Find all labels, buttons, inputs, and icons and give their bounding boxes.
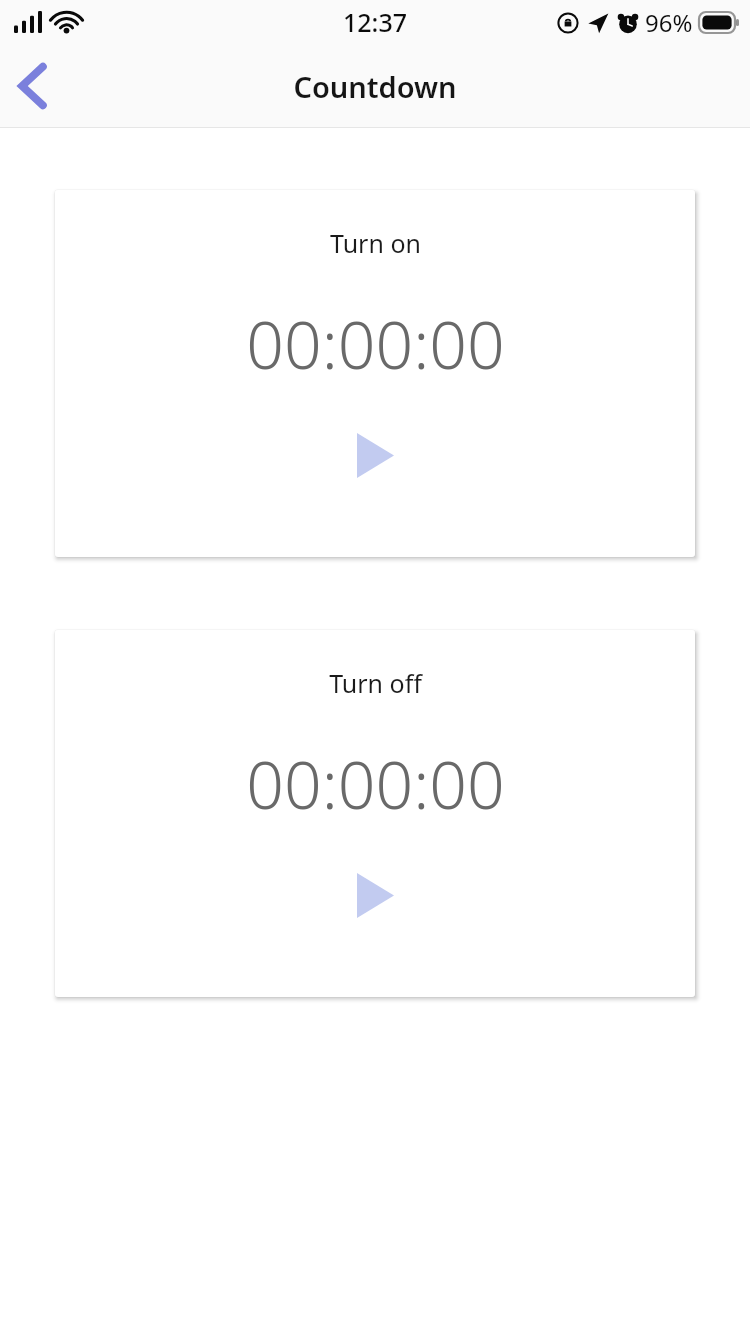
button[interactable]: Start countdown (345, 867, 405, 923)
staticText: Countdown (293, 67, 457, 106)
staticText: 96% (645, 6, 693, 39)
button[interactable]: Turn off (55, 630, 695, 997)
staticText: Turn on (330, 226, 421, 260)
staticText: 00:00:00 (246, 298, 505, 388)
staticText: 00:00:00 (246, 738, 505, 828)
button[interactable]: Start countdown (345, 427, 405, 483)
button[interactable]: Back (0, 54, 64, 118)
button[interactable]: Turn on (55, 190, 695, 557)
staticText: Turn off (329, 666, 422, 700)
staticText: 12:37 (343, 5, 408, 39)
